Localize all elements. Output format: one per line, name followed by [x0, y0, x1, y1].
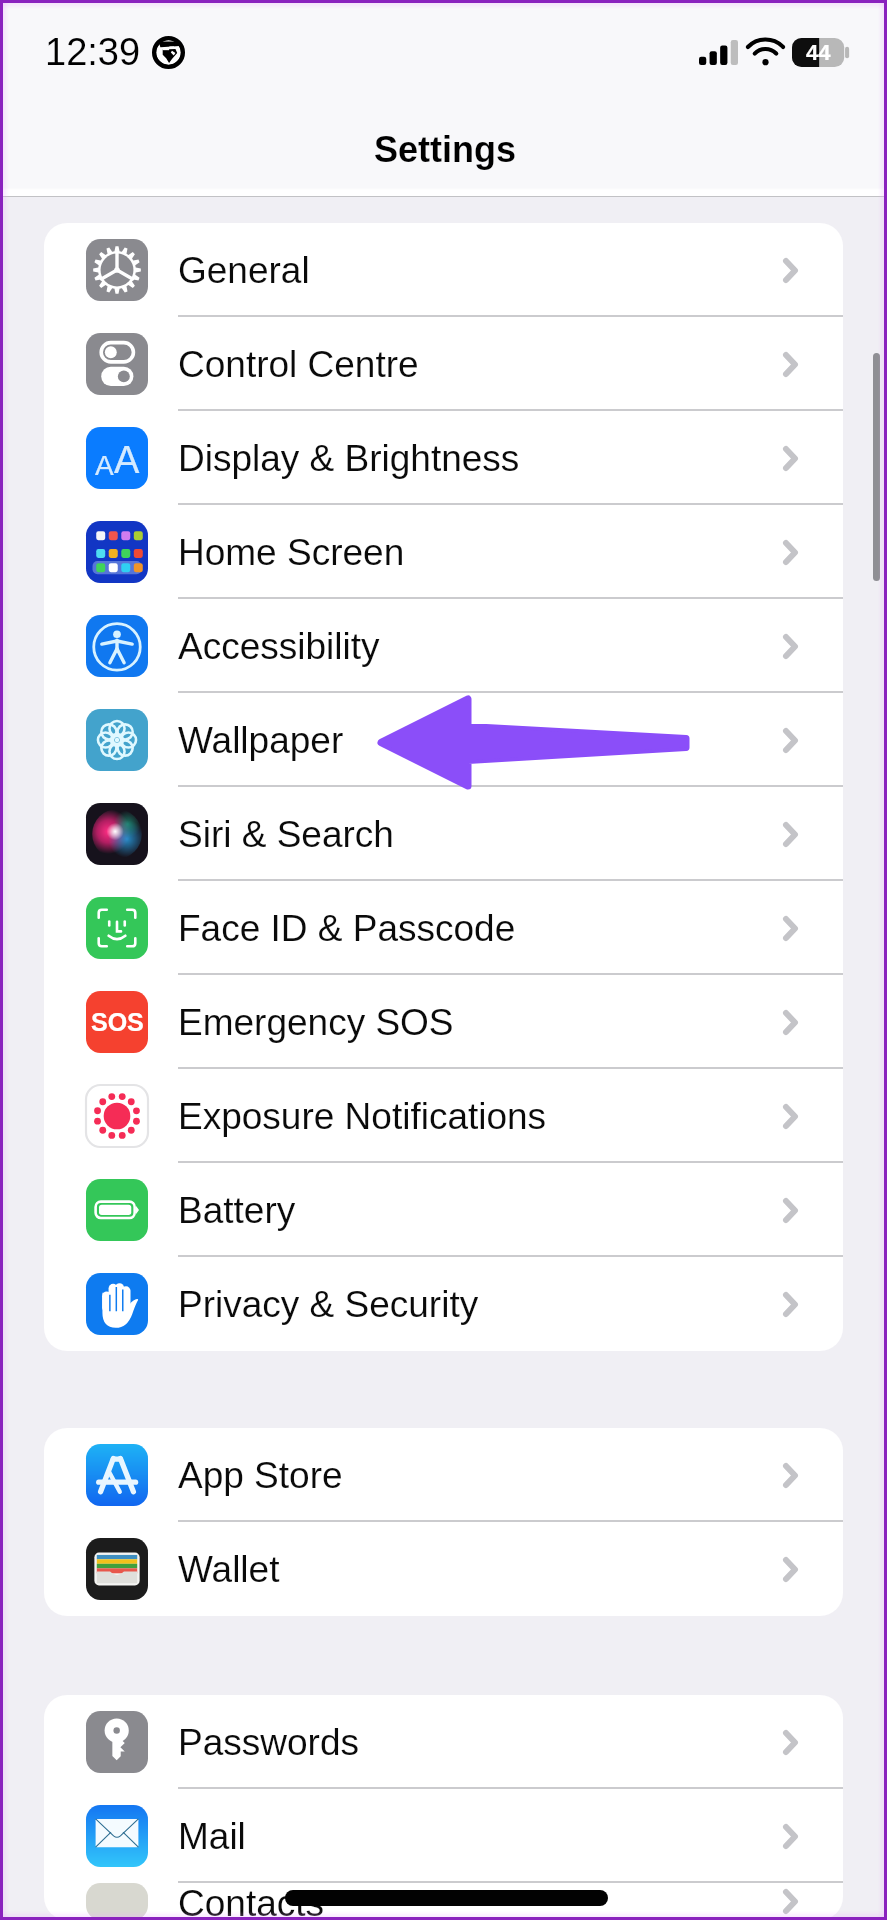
staticText: Exposure Notifications [178, 1096, 547, 1137]
staticText: Passwords [178, 1722, 359, 1763]
staticText: App Store [178, 1455, 343, 1496]
staticText: Wallpaper [178, 720, 344, 761]
staticText: General [178, 250, 310, 291]
button[interactable]: Emergency SOS [44, 975, 843, 1069]
staticText: Control Centre [178, 344, 419, 385]
staticText: A [95, 450, 114, 481]
staticText: Accessibility [178, 626, 380, 667]
button[interactable]: Contacts [44, 1883, 843, 1920]
button[interactable]: Face ID & Passcode [44, 881, 843, 975]
staticText: Display & Brightness [178, 438, 520, 479]
staticText: 44 [806, 40, 831, 65]
staticText: Settings [374, 129, 517, 169]
button[interactable]: Exposure Notifications [44, 1069, 843, 1163]
button[interactable]: General [44, 223, 843, 317]
staticText: Wallet [178, 1549, 280, 1590]
button[interactable]: Battery [44, 1163, 843, 1257]
button[interactable]: Passwords [44, 1695, 843, 1789]
staticText: Battery [178, 1190, 296, 1231]
button[interactable]: Mail [44, 1789, 843, 1883]
button[interactable]: Siri & Search [44, 787, 843, 881]
button[interactable]: Accessibility [44, 599, 843, 693]
button[interactable]: Home Screen [44, 505, 843, 599]
staticText: 12:39 [45, 31, 141, 73]
staticText: Mail [178, 1816, 246, 1857]
staticText: Contacts [178, 1883, 325, 1920]
button[interactable]: Privacy & Security [44, 1257, 843, 1351]
button[interactable]: Control Centre [44, 317, 843, 411]
staticText: A [114, 439, 140, 481]
button[interactable]: Display & Brightness [44, 411, 843, 505]
staticText: Emergency SOS [178, 1002, 454, 1043]
button[interactable]: Wallet [44, 1522, 843, 1616]
staticText: Face ID & Passcode [178, 908, 516, 949]
staticText: Home Screen [178, 532, 405, 573]
button[interactable]: Wallpaper [44, 693, 843, 787]
button[interactable]: App Store [44, 1428, 843, 1522]
staticText: SOS [91, 1008, 144, 1036]
staticText: Privacy & Security [178, 1284, 479, 1325]
staticText: Siri & Search [178, 814, 394, 855]
